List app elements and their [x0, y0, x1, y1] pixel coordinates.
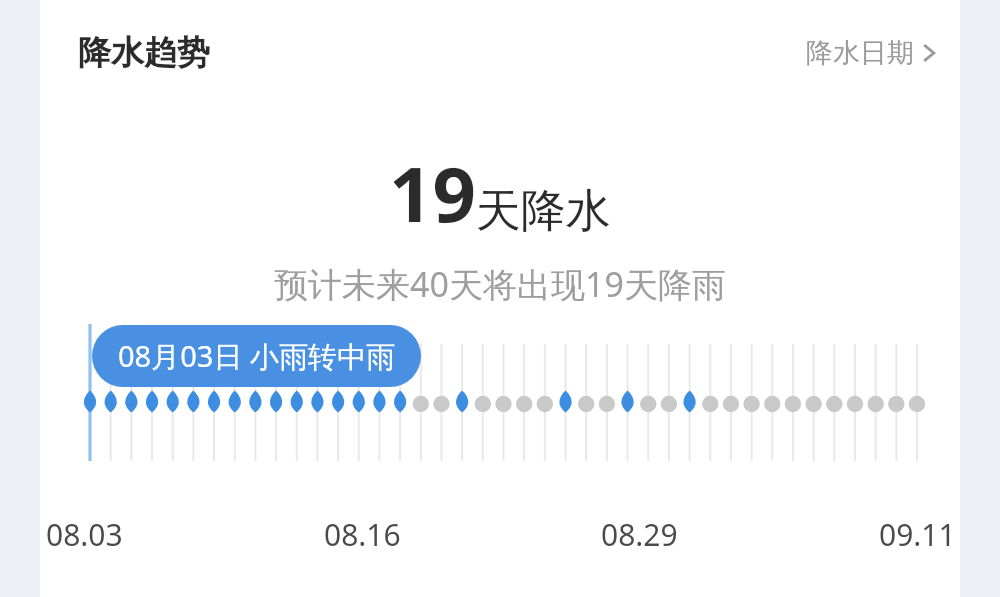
staticText: 19: [389, 141, 476, 245]
staticText: 天降水: [476, 183, 611, 240]
staticText: 预计未来40天将出现19天降雨: [40, 261, 960, 307]
staticText: 08.29: [601, 514, 678, 555]
button[interactable]: 降水日期: [794, 30, 960, 76]
staticText: 09.11: [879, 514, 956, 555]
staticText: 降水日期: [806, 36, 914, 70]
button[interactable]: 08月03日 小雨转中雨: [92, 325, 421, 387]
staticText: 08月03日 小雨转中雨: [118, 336, 395, 376]
staticText: 08.16: [324, 514, 401, 555]
staticText: 降水趋势: [78, 32, 210, 74]
staticText: 08.03: [46, 514, 123, 555]
button[interactable]: 降水趋势: [40, 28, 210, 78]
